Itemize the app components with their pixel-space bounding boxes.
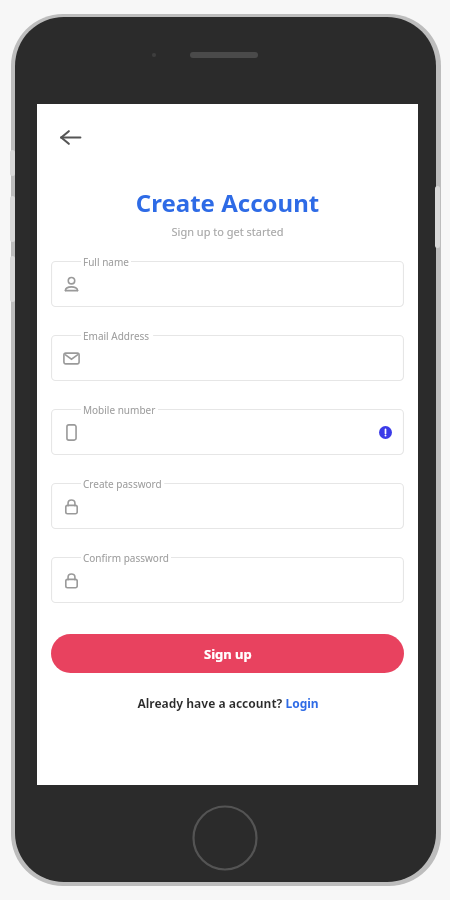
- button[interactable]: Sign up: [51, 634, 404, 673]
- staticText: Create Account: [37, 186, 418, 219]
- button[interactable]: Back: [49, 116, 91, 158]
- staticText: Email Address: [83, 329, 150, 343]
- button[interactable]: [51, 557, 404, 603]
- staticText: Create password: [83, 477, 162, 491]
- staticText: Sign up: [204, 645, 252, 663]
- button[interactable]: [51, 261, 404, 307]
- staticText: Full name: [83, 255, 129, 269]
- staticText: Confirm password: [83, 551, 169, 565]
- button[interactable]: [51, 409, 404, 455]
- staticText: Mobile number: [83, 403, 156, 417]
- button[interactable]: Already have a account? Login: [37, 695, 418, 711]
- button[interactable]: [51, 335, 404, 381]
- staticText: Sign up to get started: [37, 224, 418, 239]
- button[interactable]: [51, 483, 404, 529]
- staticText: Already have a account? Login: [137, 695, 319, 711]
